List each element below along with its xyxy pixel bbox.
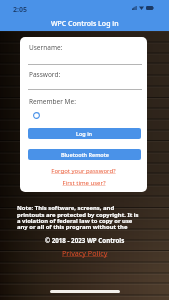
staticText: Log in — [76, 130, 93, 137]
button[interactable]: First time user? — [20, 179, 147, 187]
staticText: Forgot your password? — [51, 167, 116, 175]
staticText: 2:05 — [13, 5, 27, 15]
staticText: Note: This software, screens, and printo… — [17, 204, 143, 231]
button[interactable]: Log in — [28, 128, 141, 139]
staticText: Privacy Policy — [62, 248, 108, 258]
button[interactable]: Forgot your password? — [20, 167, 147, 175]
staticText: First time user? — [62, 179, 106, 187]
button[interactable]: Remember Me toggle — [30, 109, 42, 121]
staticText: Password: — [29, 70, 61, 79]
staticText: © 2018 - 2023 WP Controls — [45, 236, 125, 244]
staticText: Remember Me: — [29, 97, 76, 106]
staticText: WPC Controls Log in — [51, 19, 119, 29]
button[interactable]: Bluetooth Remote — [28, 149, 141, 160]
staticText: Bluetooth Remote — [61, 151, 109, 158]
staticText: Username: — [29, 43, 63, 52]
button[interactable]: Privacy Policy — [0, 248, 169, 258]
